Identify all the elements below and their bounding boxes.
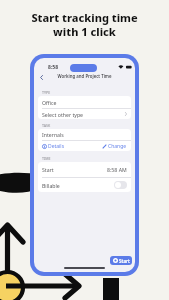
staticText: Start tracking time with 1 click (0, 10, 169, 39)
button[interactable]: Billable (114, 181, 127, 189)
staticText: Select other type (42, 111, 84, 118)
staticText: Start (42, 166, 54, 173)
staticText: TIME (42, 156, 51, 161)
staticText: 8:58 (48, 64, 58, 71)
button[interactable]: Details (42, 142, 65, 151)
button[interactable]: Internals (38, 129, 131, 140)
staticText: TYPE (42, 90, 51, 95)
button[interactable]: Back (35, 71, 47, 83)
button[interactable]: Start (110, 256, 132, 265)
staticText: Start (119, 258, 130, 264)
staticText: Change (108, 143, 127, 150)
staticText: TASK (42, 123, 51, 128)
staticText: Billable (42, 182, 60, 189)
button[interactable]: Office (38, 96, 131, 108)
button[interactable]: Change (102, 142, 127, 151)
staticText: Working and Project Time (34, 73, 135, 79)
button[interactable]: Start (38, 162, 131, 177)
staticText: Details (48, 143, 65, 150)
staticText: Internals (42, 131, 64, 138)
button[interactable]: Select other type (38, 109, 131, 119)
staticText: 8:58 AM (107, 166, 127, 173)
staticText: Office (42, 99, 57, 106)
